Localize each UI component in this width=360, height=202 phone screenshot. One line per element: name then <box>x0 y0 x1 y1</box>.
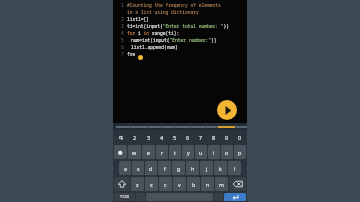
button[interactable]: ● <box>114 145 127 159</box>
staticText: z <box>136 181 139 188</box>
button[interactable]: 4 <box>156 131 168 143</box>
staticText: o <box>225 149 229 156</box>
button[interactable]: n <box>201 177 214 191</box>
button[interactable]: a <box>119 161 131 175</box>
button[interactable]: Backspace <box>229 177 246 191</box>
button[interactable]: 3 <box>142 131 155 143</box>
staticText: y <box>187 149 190 156</box>
staticText: list1.append(num) <box>131 44 178 50</box>
button[interactable]: l <box>228 161 241 175</box>
button[interactable]: Enter <box>224 193 246 201</box>
staticText: l <box>234 165 236 172</box>
button[interactable]: g <box>172 161 185 175</box>
staticText: ?123 <box>120 194 130 200</box>
staticText: a <box>124 165 127 172</box>
button[interactable]: 6 <box>182 131 194 143</box>
staticText: 3 <box>121 23 124 29</box>
button[interactable]: 5 <box>169 131 181 143</box>
button[interactable]: Shift <box>114 177 130 191</box>
staticText: 7 <box>121 51 124 57</box>
staticText: ti=int(input("Enter total number: ")) <box>127 23 229 29</box>
staticText: u <box>199 149 203 156</box>
staticText: m <box>219 181 224 188</box>
staticText: 2 <box>133 134 137 141</box>
staticText: h <box>191 165 195 172</box>
staticText: 4 <box>121 30 124 36</box>
staticText: for i in range(ti): <box>127 30 180 36</box>
button[interactable]: j <box>200 161 213 175</box>
button[interactable]: 9 <box>221 131 233 143</box>
staticText: p <box>238 149 242 156</box>
button[interactable]: f <box>158 161 171 175</box>
staticText: n <box>206 181 210 188</box>
staticText: r <box>161 149 164 156</box>
staticText: f <box>164 165 166 172</box>
staticText: ● <box>118 149 123 155</box>
button[interactable]: 2 <box>128 131 141 143</box>
button[interactable]: o <box>221 145 233 159</box>
staticText: v <box>178 181 181 188</box>
staticText: in a list using dictionary <box>127 9 199 15</box>
button[interactable]: x <box>145 177 158 191</box>
staticText: 0 <box>238 134 242 141</box>
staticText: 2 <box>121 16 124 22</box>
button[interactable]: v <box>173 177 186 191</box>
staticText: k <box>219 165 222 172</box>
staticText: fre <box>127 51 136 57</box>
button[interactable]: d <box>145 161 157 175</box>
button[interactable]: i <box>208 145 220 159</box>
button[interactable]: q <box>114 131 127 143</box>
button[interactable]: y <box>182 145 194 159</box>
staticText: list1=[] <box>127 16 150 22</box>
staticText: x <box>150 181 153 188</box>
staticText: num=int(input("Enter number:")) <box>131 37 217 43</box>
staticText: q <box>119 133 123 141</box>
button[interactable]: b <box>187 177 200 191</box>
button[interactable]: ?123 <box>114 193 135 201</box>
button[interactable]: c <box>159 177 172 191</box>
staticText: 6 <box>121 44 124 50</box>
staticText: s <box>137 165 140 172</box>
button[interactable]: m <box>215 177 228 191</box>
button[interactable]: e <box>142 145 155 159</box>
button[interactable]: p <box>234 145 246 159</box>
staticText: 5 <box>173 134 177 141</box>
button[interactable]: h <box>186 161 199 175</box>
staticText: b <box>192 181 196 188</box>
staticText: 5 <box>121 37 124 43</box>
staticText: #Counting the freqency of elements <box>127 2 221 8</box>
staticText: e <box>147 149 150 156</box>
staticText: 3 <box>147 134 151 141</box>
staticText: 1 <box>121 2 124 8</box>
button[interactable]: 7 <box>195 131 207 143</box>
button[interactable]: 1 <box>113 0 247 123</box>
button[interactable]: 0 <box>234 131 246 143</box>
button[interactable]: s <box>132 161 144 175</box>
button[interactable]: r <box>156 145 168 159</box>
staticText: i <box>213 149 215 156</box>
staticText: 8 <box>212 134 216 141</box>
staticText: 4 <box>160 134 164 141</box>
staticText: 7 <box>199 134 203 141</box>
button[interactable]: t <box>169 145 181 159</box>
staticText: j <box>206 165 208 172</box>
button[interactable]: z <box>131 177 144 191</box>
button[interactable]: 8 <box>208 131 220 143</box>
button[interactable]: k <box>214 161 227 175</box>
button[interactable]: Run <box>217 100 237 120</box>
button[interactable]: u <box>195 145 207 159</box>
staticText: 9 <box>225 134 229 141</box>
button[interactable]: w <box>128 145 141 159</box>
